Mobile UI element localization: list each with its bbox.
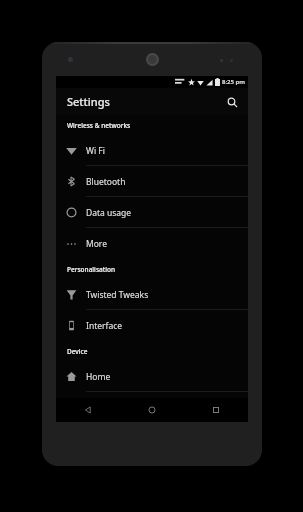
button[interactable]: Bluetooth — [56, 166, 248, 197]
button[interactable]: Home — [56, 361, 248, 392]
staticText: Home — [86, 371, 111, 383]
button[interactable]: Wi Fi — [56, 135, 248, 166]
staticText: Interface — [86, 320, 123, 332]
button[interactable]: Back — [56, 398, 120, 422]
staticText: Settings — [67, 94, 110, 109]
staticText: Data usage — [86, 207, 132, 219]
button[interactable]: Search — [222, 92, 242, 112]
staticText: Device — [67, 347, 88, 356]
button[interactable]: Data usage — [56, 197, 248, 228]
button[interactable]: Recents — [184, 398, 248, 422]
staticText: 8:25 pm — [222, 78, 245, 86]
button[interactable]: Home — [120, 398, 184, 422]
button[interactable]: Interface — [56, 310, 248, 341]
staticText: More — [86, 238, 107, 250]
button[interactable]: More — [56, 228, 248, 259]
staticText: Personalisation — [67, 265, 116, 274]
staticText: Twisted Tweaks — [86, 289, 149, 301]
staticText: Wi Fi — [86, 145, 105, 157]
staticText: Wireless & networks — [67, 121, 131, 130]
staticText: Bluetooth — [86, 176, 126, 188]
button[interactable]: Twisted Tweaks — [56, 279, 248, 310]
